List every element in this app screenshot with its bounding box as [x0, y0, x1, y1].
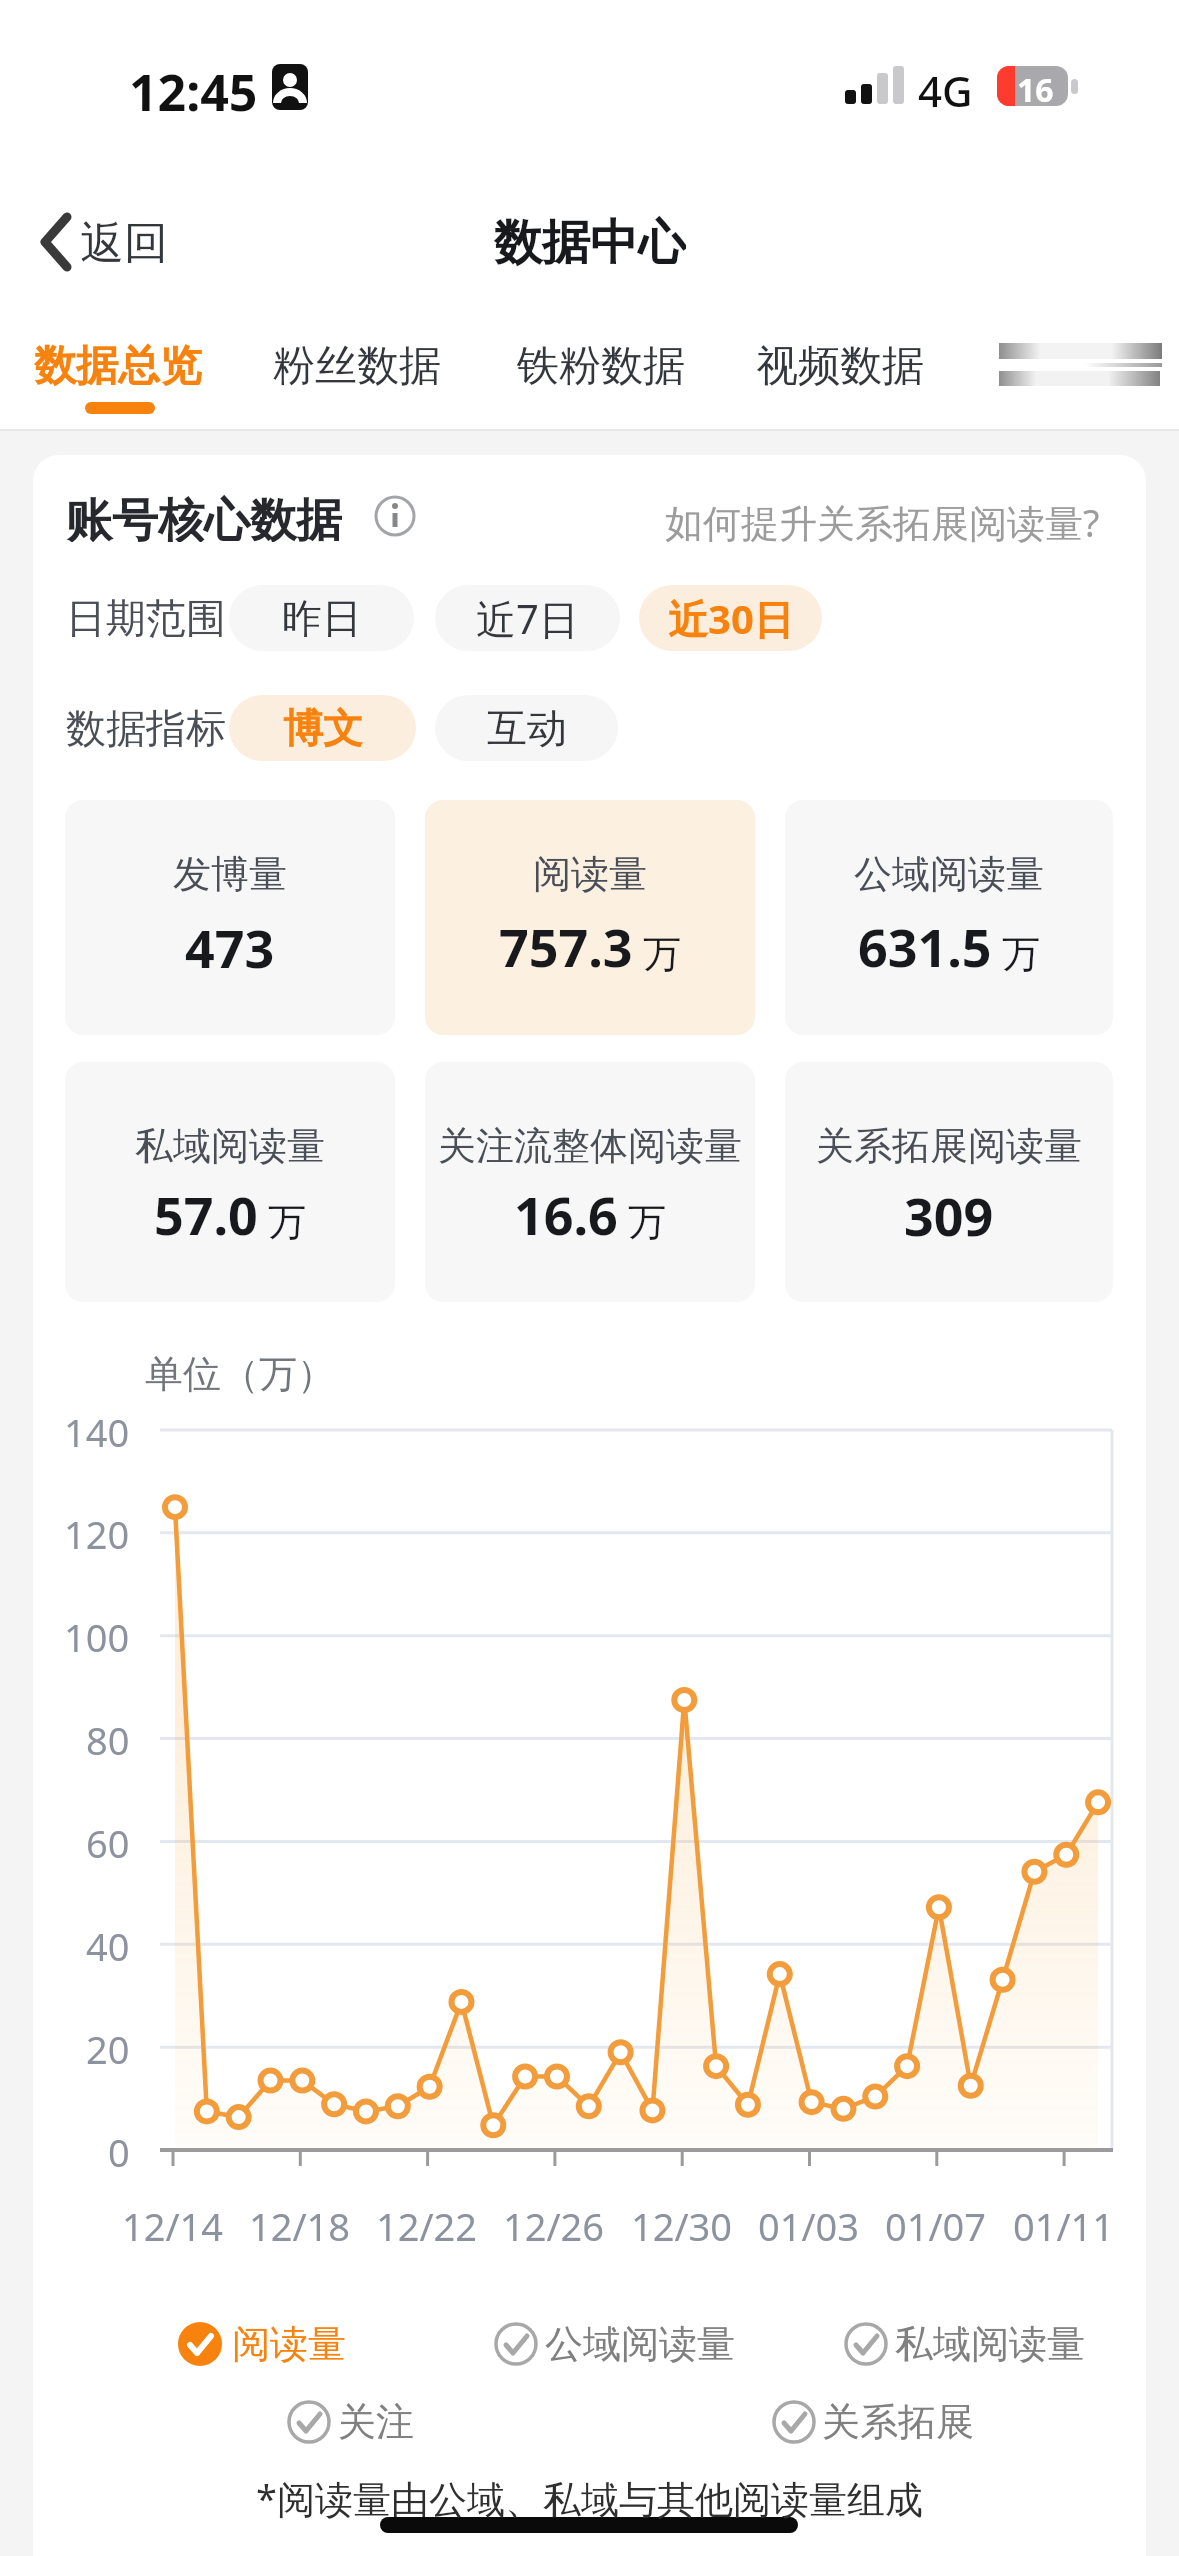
- button[interactable]: 返回: [80, 215, 180, 271]
- staticText: 阅读量: [232, 2320, 346, 2368]
- staticText: 16.6: [514, 1179, 618, 1243]
- staticText: 757.3: [499, 911, 633, 975]
- staticText: 关注流整体阅读量: [438, 1122, 742, 1170]
- staticText: 私域阅读量: [895, 2320, 1085, 2368]
- staticText: 日期范围: [66, 593, 226, 643]
- button[interactable]: 公域阅读量: [545, 2318, 765, 2370]
- staticText: 私域阅读量: [135, 1122, 325, 1170]
- staticText: 数据总览: [34, 340, 202, 393]
- staticText: 140: [64, 1406, 130, 1454]
- staticText: 01/03: [758, 2200, 860, 2248]
- staticText: 博文: [283, 703, 363, 753]
- staticText: 万: [258, 1194, 306, 1246]
- button[interactable]: 阅读量: [232, 2318, 372, 2370]
- staticText: 如何提升关系拓展阅读量?: [665, 496, 1100, 544]
- button[interactable]: 发博量: [65, 800, 395, 1035]
- staticText: 0: [108, 2126, 130, 2174]
- staticText: 关系拓展: [822, 2398, 974, 2446]
- button[interactable]: 公域阅读量: [785, 800, 1113, 1035]
- staticText: 16: [1017, 68, 1054, 106]
- button[interactable]: 私域阅读量: [895, 2318, 1115, 2370]
- staticText: 粉丝数据: [273, 340, 441, 393]
- staticText: 近7日: [476, 591, 579, 646]
- staticText: *阅读量由公域、私域与其他阅读量组成: [256, 2472, 923, 2520]
- staticText: 80: [86, 1714, 130, 1762]
- button[interactable]: 博文: [229, 695, 416, 761]
- staticText: 数据指标: [66, 703, 226, 753]
- button[interactable]: 关注: [338, 2396, 448, 2448]
- button[interactable]: 昨日: [229, 585, 414, 651]
- staticText: 万: [633, 926, 681, 978]
- staticText: 单位（万）: [145, 1350, 335, 1394]
- staticText: 关注: [338, 2398, 414, 2446]
- button[interactable]: 数据总览: [33, 338, 203, 394]
- staticText: 20: [86, 2023, 130, 2071]
- staticText: 发博量: [173, 850, 287, 898]
- staticText: 返回: [80, 216, 168, 271]
- button[interactable]: 私域阅读量: [65, 1062, 395, 1302]
- button[interactable]: 视频数据: [755, 338, 925, 394]
- staticText: 阅读量: [533, 850, 647, 898]
- staticText: 60: [86, 1817, 130, 1865]
- staticText: 12:45: [129, 58, 258, 114]
- staticText: 57.0: [154, 1179, 258, 1243]
- staticText: 昨日: [282, 593, 362, 643]
- button[interactable]: 关注流整体阅读量: [425, 1062, 755, 1302]
- button[interactable]: 近30日: [639, 585, 822, 651]
- staticText: 01/11: [1013, 2200, 1115, 2248]
- button[interactable]: 阅读量: [425, 800, 755, 1035]
- staticText: 万: [618, 1194, 666, 1246]
- staticText: 万: [992, 926, 1040, 978]
- staticText: 309: [904, 1180, 994, 1244]
- staticText: 关系拓展阅读量: [816, 1122, 1082, 1170]
- button[interactable]: 如何提升关系拓展阅读量?: [600, 496, 1100, 544]
- button[interactable]: 铁粉数据: [516, 338, 686, 394]
- staticText: 473: [185, 912, 275, 976]
- button[interactable]: 关系拓展阅读量: [785, 1062, 1113, 1302]
- staticText: 公域阅读量: [545, 2320, 735, 2368]
- button[interactable]: 粉丝数据: [272, 338, 442, 394]
- staticText: 4G: [918, 62, 973, 110]
- staticText: 铁粉数据: [517, 340, 685, 393]
- staticText: 账号核心数据: [66, 492, 342, 542]
- staticText: 12/26: [503, 2200, 605, 2248]
- staticText: 40: [86, 1920, 130, 1968]
- staticText: 12/30: [631, 2200, 733, 2248]
- staticText: 数据中心: [494, 213, 686, 271]
- button[interactable]: 关系拓展: [822, 2396, 1002, 2448]
- staticText: 01/07: [885, 2200, 987, 2248]
- staticText: 12/14: [122, 2200, 224, 2248]
- button[interactable]: 互动: [435, 695, 618, 761]
- staticText: 视频数据: [756, 340, 924, 393]
- staticText: 120: [64, 1508, 130, 1556]
- staticText: 近30日: [668, 591, 794, 646]
- staticText: 12/18: [249, 2200, 351, 2248]
- staticText: 100: [64, 1611, 130, 1659]
- staticText: 12/22: [376, 2200, 478, 2248]
- staticText: 公域阅读量: [854, 850, 1044, 898]
- staticText: 631.5: [858, 911, 992, 975]
- staticText: 互动: [487, 703, 567, 753]
- button[interactable]: 近7日: [435, 585, 620, 651]
